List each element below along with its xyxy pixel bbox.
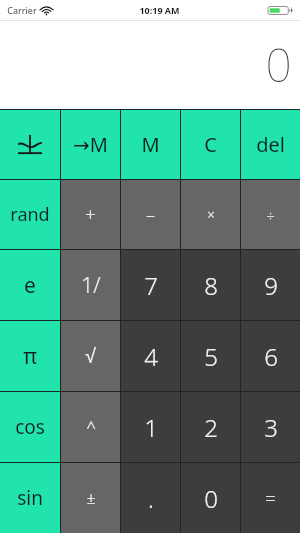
- button[interactable]: =: [241, 463, 300, 533]
- button[interactable]: .: [121, 463, 180, 533]
- button[interactable]: 0: [181, 463, 240, 533]
- staticText: 8: [204, 269, 218, 302]
- staticText: 1/: [81, 271, 101, 300]
- staticText: π: [23, 342, 37, 371]
- button[interactable]: √: [61, 321, 120, 391]
- staticText: 10:19 AM: [139, 4, 180, 16]
- button[interactable]: rand: [0, 180, 60, 249]
- button[interactable]: ^: [61, 392, 120, 462]
- staticText: 5: [204, 340, 218, 373]
- staticText: √: [85, 345, 96, 367]
- button[interactable]: 7: [121, 250, 180, 320]
- staticText: .: [148, 482, 154, 515]
- staticText: 9: [264, 269, 278, 302]
- button[interactable]: ×: [181, 180, 240, 249]
- staticText: sin: [17, 485, 43, 511]
- staticText: 4: [144, 340, 158, 373]
- button[interactable]: 9: [241, 250, 300, 320]
- staticText: e: [24, 271, 36, 300]
- staticText: M: [141, 131, 160, 158]
- button[interactable]: 5: [181, 321, 240, 391]
- staticText: 3: [264, 411, 278, 444]
- button[interactable]: cos: [0, 392, 60, 462]
- button[interactable]: 1: [121, 392, 180, 462]
- staticText: →M: [73, 131, 108, 158]
- staticText: ÷: [266, 205, 275, 225]
- staticText: +: [85, 202, 96, 227]
- staticText: =: [265, 485, 276, 511]
- button[interactable]: 1/: [61, 250, 120, 320]
- staticText: ^: [86, 416, 96, 439]
- staticText: 2: [204, 411, 218, 444]
- button[interactable]: 4: [121, 321, 180, 391]
- staticText: 0: [265, 33, 292, 96]
- button[interactable]: Plot graph: [0, 110, 60, 179]
- staticText: del: [256, 131, 285, 158]
- staticText: 0: [204, 482, 218, 515]
- staticText: 7: [144, 269, 158, 302]
- staticText: C: [204, 131, 217, 158]
- staticText: cos: [15, 414, 45, 440]
- staticText: 1: [144, 411, 158, 444]
- button[interactable]: sin: [0, 463, 60, 533]
- button[interactable]: ±: [61, 463, 120, 533]
- staticText: 6: [264, 340, 278, 373]
- button[interactable]: C: [181, 110, 240, 179]
- button[interactable]: 8: [181, 250, 240, 320]
- staticText: rand: [10, 202, 50, 227]
- button[interactable]: →M: [61, 110, 120, 179]
- staticText: ±: [86, 487, 96, 509]
- button[interactable]: 6: [241, 321, 300, 391]
- staticText: ×: [207, 205, 215, 224]
- button[interactable]: +: [61, 180, 120, 249]
- button[interactable]: M: [121, 110, 180, 179]
- staticText: –: [146, 202, 155, 227]
- button[interactable]: 3: [241, 392, 300, 462]
- button[interactable]: e: [0, 250, 60, 320]
- staticText: Carrier: [7, 4, 37, 16]
- button[interactable]: –: [121, 180, 180, 249]
- button[interactable]: 2: [181, 392, 240, 462]
- button[interactable]: ÷: [241, 180, 300, 249]
- button[interactable]: π: [0, 321, 60, 391]
- button[interactable]: del: [241, 110, 300, 179]
